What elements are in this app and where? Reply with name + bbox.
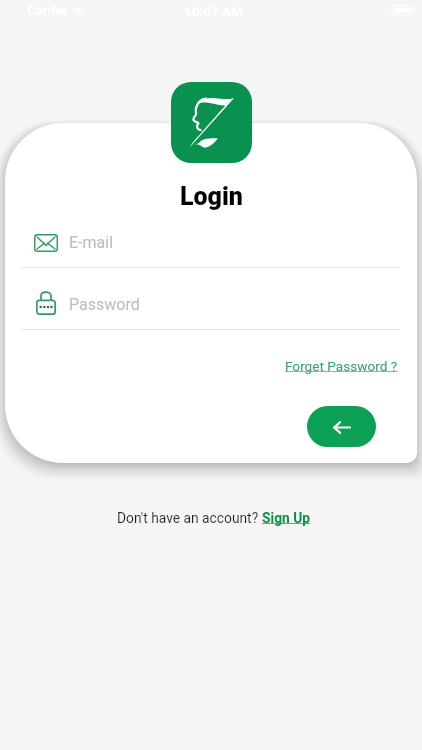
staticText: Carrier: [27, 3, 68, 18]
staticText: Forget Password ?: [285, 358, 398, 374]
button[interactable]: Forget Password ?: [279, 353, 404, 379]
button[interactable]: E-mail: [22, 224, 400, 265]
staticText: Sign Up: [262, 510, 311, 526]
staticText: Login: [180, 182, 243, 211]
button[interactable]: Sign Up: [262, 510, 311, 526]
button[interactable]: Password: [22, 286, 400, 327]
staticText: Don't have an account?: [117, 510, 262, 526]
staticText: Password: [69, 295, 140, 314]
staticText: E-mail: [69, 233, 114, 252]
button[interactable]: Sign in: [307, 406, 376, 447]
staticText: 10:07 AM: [184, 3, 244, 19]
